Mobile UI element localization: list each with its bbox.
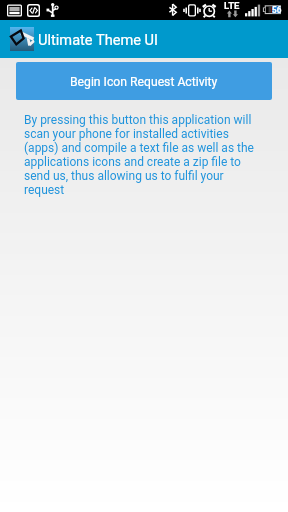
- staticText: 56: [272, 5, 282, 15]
- staticText: Begin Icon Request Activity: [70, 75, 218, 89]
- staticText: Ultimate Theme UI: [38, 31, 158, 48]
- other: Ultimate Theme UI app icon: [10, 27, 34, 51]
- button[interactable]: Begin Icon Request Activity: [16, 62, 272, 100]
- button[interactable]: Ultimate Theme UI app icon: [0, 20, 288, 58]
- staticText: LTE: [224, 0, 240, 11]
- staticText: By pressing this button this application…: [24, 113, 256, 197]
